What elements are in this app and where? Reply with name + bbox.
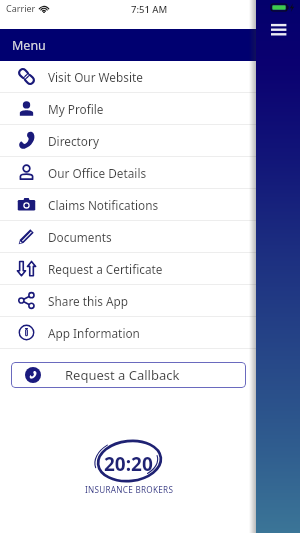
staticText: Menu (12, 37, 46, 54)
button[interactable]: Share this App (0, 285, 256, 316)
staticText: Request a Certificate (48, 261, 163, 277)
button[interactable]: Request a Callback (11, 362, 246, 388)
button[interactable]: Claims Notifications (0, 189, 256, 220)
button[interactable]: Open navigation menu (267, 19, 291, 40)
staticText: My Profile (48, 101, 104, 117)
staticText: Claims Notifications (48, 197, 159, 213)
button[interactable]: My Profile (0, 93, 256, 124)
button[interactable]: Our Office Details (0, 157, 256, 188)
staticText: Directory (48, 133, 99, 149)
staticText: Documents (48, 229, 112, 245)
button[interactable]: App Information (0, 317, 256, 348)
staticText: INSURANCE BROKERS (85, 484, 174, 495)
staticText: Visit Our Website (48, 69, 143, 85)
staticText: 7:51 AM (131, 3, 168, 16)
staticText: Our Office Details (48, 165, 147, 181)
staticText: Share this App (48, 293, 129, 309)
button[interactable]: Documents (0, 221, 256, 252)
button[interactable]: Visit Our Website (0, 61, 256, 92)
staticText: App Information (48, 325, 140, 341)
staticText: Carrier (6, 2, 36, 14)
staticText: 20:20 (104, 451, 153, 477)
button[interactable]: Request a Certificate (0, 253, 256, 284)
staticText: Request a Callback (65, 366, 180, 384)
button[interactable]: Directory (0, 125, 256, 156)
